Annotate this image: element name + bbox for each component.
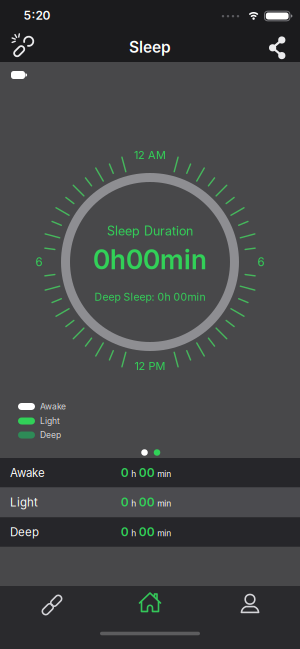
staticText: 6 — [35, 255, 42, 269]
staticText: Sleep Duration — [107, 223, 193, 238]
staticText: min — [157, 469, 171, 479]
staticText: min — [157, 528, 171, 538]
staticText: 12 PM — [134, 359, 165, 373]
button[interactable]: Disconnect — [6, 28, 42, 64]
staticText: Deep Sleep: 0h 00min — [94, 291, 205, 303]
staticText: h — [131, 469, 136, 479]
staticText: Light — [40, 416, 60, 426]
staticText: 12 AM — [134, 148, 166, 162]
staticText: min — [157, 498, 171, 509]
button[interactable]: Connections — [20, 582, 84, 628]
staticText: 6 — [257, 255, 264, 269]
button[interactable]: Profile — [218, 582, 282, 628]
staticText: Deep — [40, 430, 61, 440]
staticText: 0 — [121, 495, 129, 509]
staticText: 0h00min — [93, 243, 207, 276]
staticText: h — [131, 498, 136, 509]
staticText: 00 — [139, 525, 155, 539]
staticText: 0 — [121, 525, 129, 539]
staticText: h — [131, 528, 136, 538]
staticText: Awake — [10, 466, 45, 480]
staticText: 5:20 — [23, 8, 50, 23]
staticText: Light — [10, 495, 38, 509]
staticText: 00 — [139, 495, 155, 509]
button[interactable]: Home — [118, 581, 182, 627]
button[interactable]: Share — [259, 29, 295, 65]
staticText: Deep — [10, 525, 39, 539]
staticText: 00 — [139, 465, 155, 480]
staticText: Awake — [40, 401, 66, 412]
staticText: Sleep — [129, 38, 171, 56]
staticText: 0 — [121, 465, 129, 480]
